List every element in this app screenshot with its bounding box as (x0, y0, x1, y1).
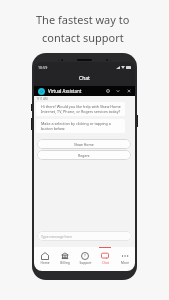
staticText: More (121, 261, 129, 265)
staticText: 9:11 AM (37, 97, 48, 101)
button[interactable]: Shaw Home (37, 139, 131, 149)
staticText: Make a selection by clicking or tapping … (41, 121, 122, 131)
staticText: Shaw Home (74, 142, 94, 147)
button[interactable]: Settings (105, 88, 111, 94)
button[interactable]: ? (75, 247, 95, 271)
staticText: Home (40, 261, 50, 265)
staticText: Type message here (41, 234, 72, 239)
staticText: Virtual Assistant (48, 88, 82, 94)
button[interactable]: Chat (95, 247, 115, 271)
staticText: ? (84, 253, 86, 259)
staticText: contact support (42, 30, 124, 45)
button[interactable]: Close (126, 88, 132, 94)
button[interactable]: Type message here (37, 231, 132, 241)
button[interactable]: More (115, 247, 135, 271)
button[interactable]: Minimize (115, 88, 121, 94)
staticText: 10:59 (38, 65, 48, 70)
staticText: Billing (60, 261, 70, 265)
staticText: Support (79, 261, 92, 265)
button[interactable]: Rogers (37, 150, 131, 160)
button[interactable]: Billing (55, 247, 75, 271)
staticText: Chat (102, 261, 109, 265)
staticText: Rogers (78, 153, 90, 158)
staticText: Chat (79, 75, 90, 82)
staticText: The fastest way to (36, 12, 130, 27)
staticText: Hi there! Would you like help with Shaw … (41, 104, 122, 114)
button[interactable]: Home (34, 247, 55, 271)
